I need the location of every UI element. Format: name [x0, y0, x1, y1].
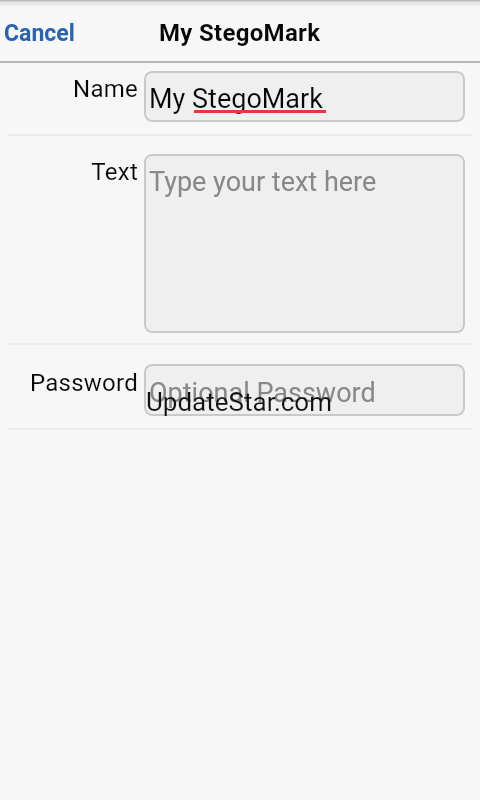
staticText: Text — [0, 158, 138, 186]
button[interactable]: Password field — [144, 364, 465, 416]
staticText: UpdateStar.com — [146, 387, 332, 417]
staticText: Cancel — [4, 20, 75, 47]
staticText: Name — [0, 75, 138, 103]
button[interactable]: Cancel — [0, 14, 85, 53]
button[interactable]: Name field — [144, 71, 465, 122]
staticText: My StegoMark — [159, 19, 321, 47]
staticText: Type your text here — [149, 166, 377, 198]
staticText: Optional Password — [149, 377, 376, 409]
staticText: My StegoMark — [149, 83, 323, 115]
button[interactable]: Text field — [144, 154, 465, 333]
staticText: Password — [0, 369, 138, 397]
